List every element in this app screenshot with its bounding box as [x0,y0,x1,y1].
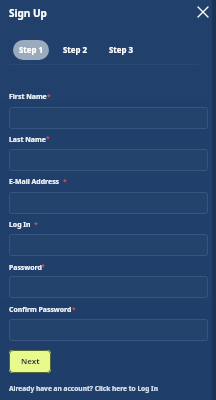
button[interactable]: Close [193,2,213,22]
staticText: Confirm Password [9,305,72,314]
staticText: Log In [9,220,31,229]
staticText: * [47,92,51,101]
staticText: * [34,220,38,229]
staticText: * [46,134,50,143]
staticText: Next [21,356,40,367]
button[interactable] [9,276,208,298]
button[interactable]: Step 1 [13,40,49,60]
button[interactable] [9,192,208,214]
staticText: Step 1 [19,45,44,56]
button[interactable]: Already have an account? Click here to L… [9,384,158,393]
staticText: Already have an account? Click here to L… [9,384,158,393]
staticText: * [63,177,67,186]
button[interactable] [9,149,208,171]
button[interactable]: Step 3 [103,40,139,60]
button[interactable] [9,107,208,129]
button[interactable]: Next [9,350,51,373]
staticText: Sign Up [9,6,47,20]
staticText: E-Mail Address [9,177,60,186]
button[interactable] [9,319,208,341]
staticText: Password [9,263,42,272]
staticText: Step 3 [109,45,134,56]
staticText: First Name [9,92,47,101]
button[interactable] [9,234,208,256]
staticText: * [41,262,45,271]
staticText: * [72,305,76,314]
button[interactable]: Step 2 [57,40,93,60]
staticText: Last Name [9,135,46,144]
staticText: Step 2 [63,45,88,56]
